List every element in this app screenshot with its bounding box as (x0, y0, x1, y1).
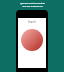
staticText: Quickly find the photos (20, 2, 45, 5)
staticText: Search (18, 20, 46, 24)
staticText: you are looking for (22, 5, 43, 8)
